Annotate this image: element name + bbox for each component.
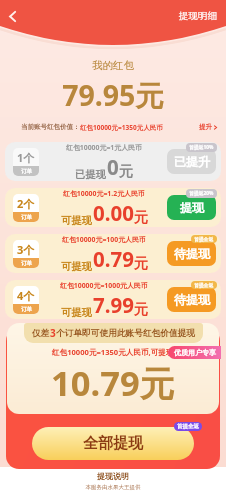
staticText: 全部提现 bbox=[83, 434, 143, 453]
staticText: 红包10000元=1000元人民币 bbox=[60, 281, 148, 290]
staticText: 可提现 bbox=[61, 306, 92, 319]
staticText: 首提全返 bbox=[177, 423, 199, 430]
staticText: 元 bbox=[134, 209, 148, 227]
staticText: 我的红包 bbox=[0, 59, 226, 72]
staticText: 待提现 bbox=[174, 246, 210, 261]
button[interactable]: 3个 bbox=[5, 234, 221, 273]
staticText: 提现说明 bbox=[0, 471, 226, 481]
staticText: 提现明细 bbox=[179, 10, 217, 22]
staticText: 0.00 bbox=[93, 199, 134, 227]
staticText: 可提现 bbox=[61, 260, 92, 273]
staticText: 2个 bbox=[17, 196, 35, 211]
button[interactable]: 全部提现 bbox=[32, 427, 194, 460]
staticText: 已提现 bbox=[75, 168, 106, 181]
button[interactable]: 待提现 bbox=[167, 287, 216, 312]
staticText: 3个 bbox=[17, 242, 35, 257]
staticText: 0.79 bbox=[93, 245, 134, 273]
button[interactable]: 提现 bbox=[167, 195, 216, 220]
staticText: 元 bbox=[119, 163, 133, 181]
staticText: 元 bbox=[134, 301, 148, 319]
staticText: 订单 bbox=[21, 260, 32, 267]
staticText: 首提返10% bbox=[189, 144, 214, 151]
staticText: 订单 bbox=[21, 214, 32, 221]
staticText: 10.79元 bbox=[51, 359, 175, 406]
staticText: 红包10000元=1元人民币 bbox=[66, 143, 142, 152]
staticText: 红包10000元=100元人民币 bbox=[62, 235, 146, 244]
staticText: 订单 bbox=[21, 306, 32, 313]
button[interactable]: Back bbox=[1, 5, 23, 27]
staticText: 提升 bbox=[199, 123, 212, 131]
staticText: 首提全返 bbox=[194, 236, 214, 242]
staticText: 待提现 bbox=[174, 292, 210, 307]
staticText: 首提全返 bbox=[194, 282, 214, 288]
staticText: 优质用户专享 bbox=[174, 348, 216, 357]
button[interactable]: 已提升 bbox=[167, 149, 216, 174]
staticText: 已提升 bbox=[174, 154, 210, 169]
staticText: 4个 bbox=[17, 288, 35, 303]
staticText: 提现 bbox=[180, 200, 204, 215]
staticText: 元 bbox=[134, 255, 148, 273]
button[interactable]: 4个 bbox=[5, 280, 221, 319]
staticText: 订单 bbox=[21, 168, 32, 175]
staticText: 红包10000元=1350元人民币 bbox=[80, 123, 163, 132]
button[interactable]: 2个 bbox=[5, 188, 221, 227]
staticText: 0 bbox=[107, 153, 119, 181]
staticText: 1个 bbox=[17, 150, 35, 165]
staticText: 当前账号红包价值： bbox=[21, 123, 80, 131]
staticText: 7.99 bbox=[93, 291, 134, 319]
staticText: 个订单即可使用此账号红包价值提现 bbox=[56, 328, 195, 339]
staticText: 可提现 bbox=[61, 214, 92, 227]
button[interactable]: 1个 bbox=[5, 142, 221, 181]
staticText: 红包10000元=1.2元人民币 bbox=[63, 189, 145, 198]
button[interactable]: 待提现 bbox=[167, 241, 216, 266]
staticText: 首提返20% bbox=[189, 190, 214, 197]
staticText: 3 bbox=[50, 326, 56, 340]
staticText: 79.95元 bbox=[0, 76, 226, 115]
staticText: 本服务由水果大王提供 bbox=[0, 484, 226, 491]
staticText: 仅差 bbox=[32, 328, 50, 339]
staticText: 红包10000元=1350元人民币,可提现 bbox=[52, 347, 174, 357]
button[interactable]: 提现明细 bbox=[177, 7, 219, 25]
button[interactable]: 提升 bbox=[197, 120, 220, 134]
